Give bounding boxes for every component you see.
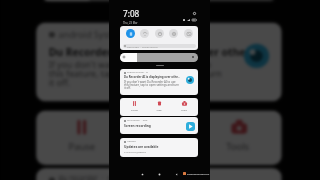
button[interactable]: Pause	[46, 110, 115, 165]
button[interactable]: Quick setting	[155, 29, 164, 38]
button[interactable]: du recorder · now	[36, 168, 282, 180]
staticText: Updates are available	[124, 145, 159, 149]
staticText: Du Recorder AI is displaying over othe..	[49, 44, 253, 56]
button[interactable]: Pause	[123, 98, 145, 116]
button[interactable]: Updater	[120, 138, 198, 157]
button[interactable]: Home	[158, 173, 161, 176]
button[interactable]: du recorder · now	[120, 117, 198, 134]
staticText: Stop	[149, 141, 171, 153]
button[interactable]: Quick setting	[126, 29, 135, 38]
staticText: V13.0.5.0.SJAMIXM	[124, 150, 146, 153]
staticText: Tap to edit · Screen record	[127, 45, 158, 48]
staticText: Pause	[68, 141, 96, 153]
staticText: du recorder · now	[58, 174, 124, 180]
button[interactable]: Tools	[173, 98, 195, 116]
button[interactable]: android System · M	[36, 23, 282, 101]
staticText: Screen recording	[124, 124, 151, 128]
staticText: Updater	[127, 140, 136, 143]
staticText: Tools	[225, 141, 250, 153]
staticText: android System · M	[127, 71, 148, 74]
button[interactable]: Stop	[124, 110, 194, 165]
staticText: Du Recorder AI is displaying over othe..	[124, 75, 180, 79]
button[interactable]: Back	[175, 173, 178, 176]
button[interactable]: Quick setting	[169, 29, 178, 38]
staticText: du recorder · now	[127, 119, 148, 122]
button[interactable]: Stop	[148, 98, 170, 116]
staticText: Pause	[131, 108, 138, 111]
button[interactable]: Quick setting	[140, 29, 149, 38]
staticText: Thu, 23 Mar	[123, 21, 138, 25]
staticText: If you don't want Du Recorder AI to use …	[49, 59, 222, 89]
staticText: If you don't want Du Recorder AI to use …	[124, 80, 179, 90]
staticText: android System · M	[58, 29, 143, 41]
button[interactable]: Recents	[141, 173, 144, 176]
button[interactable]: Tools	[203, 110, 272, 165]
button[interactable]: Settings	[193, 12, 196, 15]
button[interactable]: Brightness	[120, 53, 198, 62]
staticText: 7:08	[123, 8, 140, 19]
staticText: Tools	[181, 108, 187, 111]
staticText: Stop	[156, 108, 162, 111]
staticText: screenrecorder.com	[187, 172, 210, 175]
button[interactable]: Tap to edit · Screen record	[123, 44, 196, 48]
button[interactable]: android System · M	[120, 69, 198, 95]
button[interactable]: Quick setting	[184, 29, 193, 38]
button[interactable]: Brightness	[36, 0, 282, 1]
